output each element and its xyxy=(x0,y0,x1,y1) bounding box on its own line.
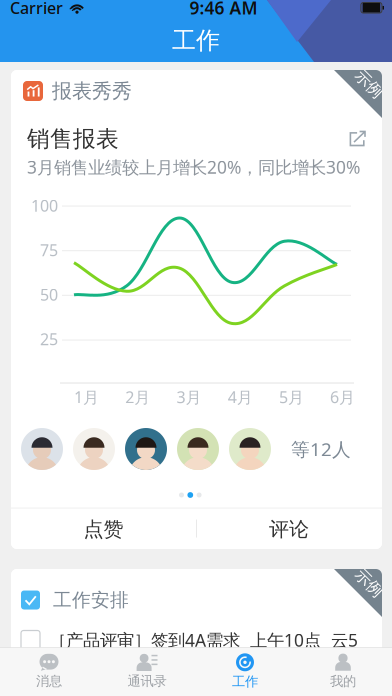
staticText: 工作 xyxy=(232,673,258,690)
staticText: 示例 xyxy=(353,573,385,593)
staticText: 3月 xyxy=(176,386,201,408)
staticText: 9:46 AM xyxy=(189,0,257,19)
button[interactable]: 工作安排 xyxy=(11,569,382,615)
staticText: 50 xyxy=(40,284,58,305)
staticText: 3月销售业绩较上月增长20%，同比增长30% xyxy=(27,155,360,178)
button[interactable]: 通讯录 xyxy=(98,650,196,694)
staticText: 1月 xyxy=(74,386,99,408)
button[interactable]: 点赞 xyxy=(11,508,196,550)
staticText: ［产品评审］签到4A需求 上午10点 云5 xyxy=(49,628,358,651)
staticText: 我的 xyxy=(330,673,356,689)
staticText: 通讯录 xyxy=(127,673,166,689)
button[interactable]: 评论 xyxy=(196,508,382,550)
staticText: 消息 xyxy=(36,673,62,689)
staticText: 100 xyxy=(31,195,58,216)
staticText: 报表秀秀 xyxy=(52,79,132,103)
staticText: 工作安排 xyxy=(53,588,129,611)
staticText: 4月 xyxy=(228,386,253,408)
staticText: 25 xyxy=(40,328,58,350)
staticText: 75 xyxy=(40,239,58,261)
staticText: 评论 xyxy=(269,517,309,542)
staticText: 工作 xyxy=(172,26,220,55)
staticText: 2月 xyxy=(125,386,150,408)
staticText: 销售报表 xyxy=(27,125,119,153)
button[interactable]: ［产品评审］签到4A需求 上午10点 云5 xyxy=(11,615,382,655)
staticText: Carrier xyxy=(10,0,63,18)
staticText: 示例 xyxy=(353,74,385,94)
button[interactable]: 打开报表 xyxy=(349,130,366,147)
button[interactable]: 我的 xyxy=(294,650,392,694)
staticText: 6月 xyxy=(330,386,355,408)
staticText: 点赞 xyxy=(83,517,123,542)
button[interactable]: 消息 xyxy=(0,650,98,694)
button[interactable]: 工作 xyxy=(196,649,294,695)
staticText: 等12人 xyxy=(291,437,351,461)
staticText: 5月 xyxy=(279,386,304,408)
